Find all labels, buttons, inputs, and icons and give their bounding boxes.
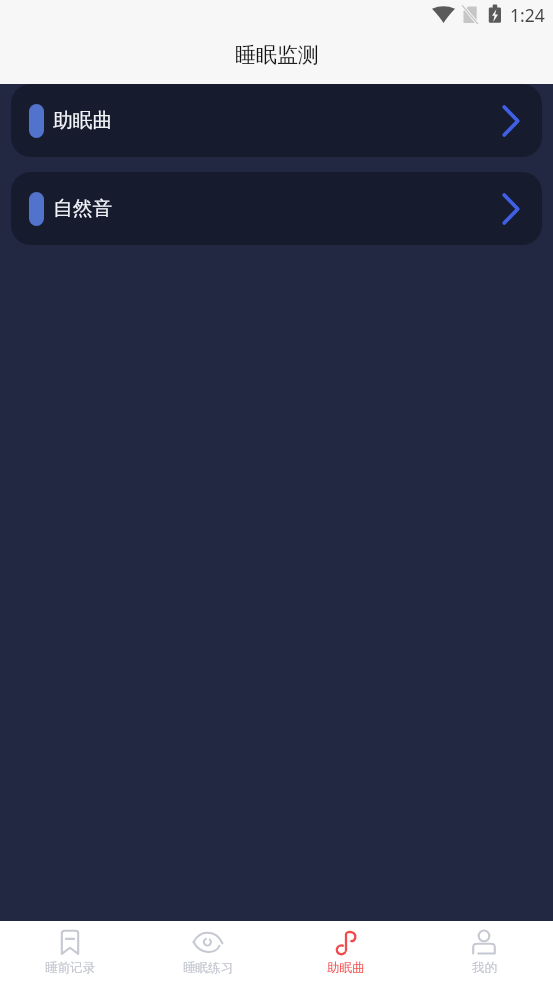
button[interactable]: 睡眠练习	[139, 921, 277, 983]
staticText: 自然音	[53, 196, 113, 221]
staticText: 我的	[472, 960, 497, 976]
button[interactable]: 助眠曲	[277, 921, 415, 983]
staticText: 睡前记录	[45, 960, 95, 976]
button[interactable]: 我的	[415, 921, 553, 983]
staticText: 助眠曲	[53, 108, 113, 133]
button[interactable]: 助眠曲	[11, 84, 542, 157]
other: Open 自然音	[502, 193, 520, 225]
button[interactable]: 睡前记录	[0, 921, 139, 983]
staticText: 睡眠监测	[235, 42, 319, 68]
other: Open 助眠曲	[502, 105, 520, 137]
staticText: 助眠曲	[327, 960, 365, 976]
button[interactable]: 自然音	[11, 172, 542, 245]
staticText: 1:24	[510, 3, 545, 27]
staticText: 睡眠练习	[183, 960, 233, 976]
